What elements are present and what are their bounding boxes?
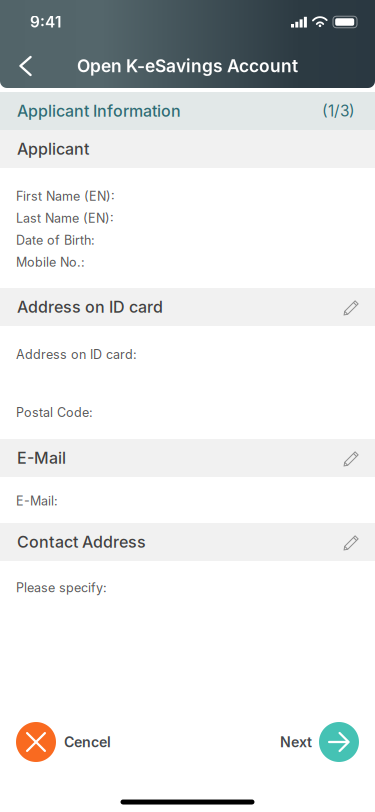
button[interactable]: Edit Contact Address [331, 523, 372, 561]
staticText: 9:41 [30, 13, 61, 31]
button[interactable]: Cencel [16, 722, 111, 762]
staticText: Mobile No.: [16, 254, 85, 270]
staticText: First Name (EN): [16, 188, 115, 204]
staticText: Postal Code: [16, 405, 93, 420]
staticText: Contact Address [17, 532, 146, 552]
staticText: Date of Birth: [16, 232, 95, 248]
staticText: Applicant Information [17, 101, 181, 121]
button[interactable]: Next [280, 722, 359, 762]
staticText: Last Name (EN): [16, 210, 114, 226]
staticText: Address on ID card [17, 297, 163, 317]
staticText: Open K-eSavings Account [77, 55, 298, 76]
staticText: Cencel [64, 733, 111, 750]
button[interactable]: Edit E-Mail [331, 439, 372, 477]
staticText: Applicant [17, 139, 89, 159]
button[interactable]: Edit Address on ID card [331, 288, 372, 326]
staticText: E-Mail [17, 448, 66, 468]
staticText: (1/3) [322, 102, 355, 120]
staticText: Address on ID card: [16, 347, 137, 362]
staticText: Next [280, 733, 312, 750]
button[interactable]: Back [3, 44, 47, 88]
staticText: Please specify: [16, 580, 107, 595]
staticText: E-Mail: [16, 493, 58, 509]
